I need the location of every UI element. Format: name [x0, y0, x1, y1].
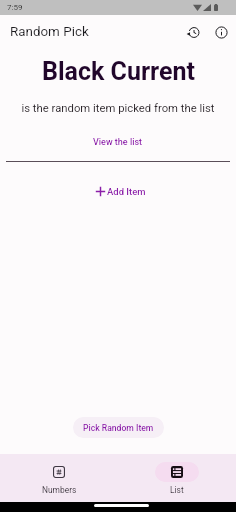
staticText: Add Item [107, 186, 146, 197]
button[interactable]: Add Item [84, 184, 152, 199]
button[interactable]: Pick Random Item [73, 417, 164, 438]
staticText: Pick Random Item [83, 423, 154, 433]
staticText: Random Pick [10, 24, 89, 40]
button[interactable]: View the list [86, 135, 150, 150]
staticText: is the random item picked from the list [21, 102, 215, 115]
staticText: List [170, 485, 184, 495]
staticText: Numbers [42, 485, 77, 495]
staticText: View the list [93, 137, 143, 148]
staticText: Black Current [42, 57, 195, 86]
staticText: 7:59 [7, 3, 23, 12]
button[interactable]: History [179, 18, 207, 46]
button[interactable]: Numbers [0, 454, 118, 502]
button[interactable]: Info [207, 18, 235, 46]
button[interactable]: List [118, 454, 236, 502]
